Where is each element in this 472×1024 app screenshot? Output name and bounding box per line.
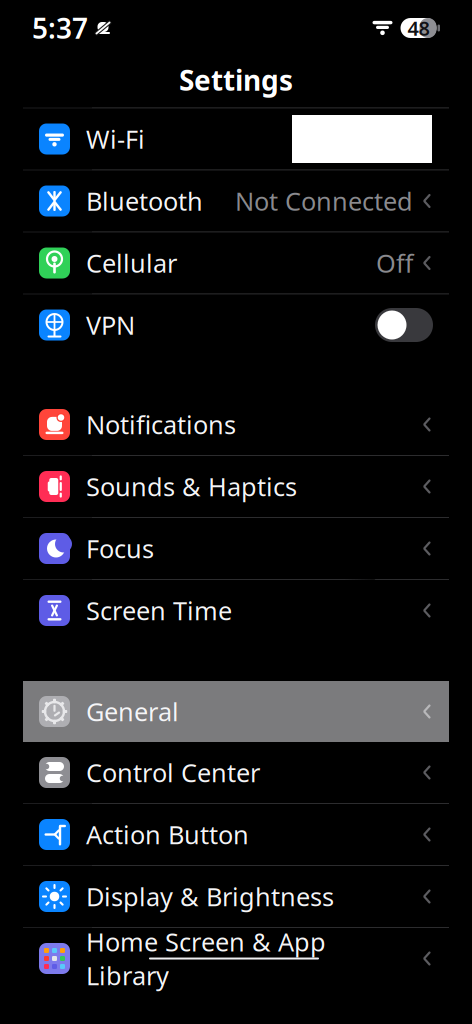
staticText: Settings [179, 61, 293, 99]
button[interactable]: Focus [23, 518, 449, 579]
button[interactable]: General [23, 681, 449, 742]
button[interactable]: Display & Brightness [23, 866, 449, 927]
button[interactable]: Wi-Fi [23, 108, 449, 169]
staticText: Action Button [86, 818, 249, 851]
staticText: Cellular [86, 246, 177, 280]
staticText: 48 [407, 15, 429, 41]
button[interactable]: Cellular [23, 232, 449, 293]
staticText: Display & Brightness [86, 880, 334, 913]
button[interactable]: Home Screen & App Library [23, 928, 449, 989]
staticText: 5:37 [32, 9, 88, 47]
staticText: Off [376, 246, 413, 280]
button[interactable]: Notifications [23, 394, 449, 455]
button[interactable]: Control Center [23, 742, 449, 803]
staticText: Bluetooth [86, 184, 203, 218]
staticText: Screen Time [86, 594, 232, 627]
staticText: Airplane Mode [86, 60, 261, 94]
staticText: Home Screen & App Library [86, 925, 326, 992]
staticText: Control Center [86, 756, 260, 789]
button[interactable]: Sounds & Haptics [23, 456, 449, 517]
button[interactable]: Airplane Mode [23, 46, 449, 107]
staticText: Notifications [86, 408, 236, 441]
staticText: General [86, 695, 179, 728]
button[interactable]: Screen Time [23, 580, 449, 641]
button[interactable]: Action Button [23, 804, 449, 865]
staticText: VPN [86, 308, 135, 342]
staticText: Wi-Fi [86, 122, 145, 156]
staticText: Not Connected [235, 184, 413, 218]
button[interactable]: VPN [23, 294, 449, 355]
staticText: Focus [86, 532, 154, 565]
staticText: Sounds & Haptics [86, 470, 297, 503]
button[interactable]: Bluetooth [23, 170, 449, 231]
